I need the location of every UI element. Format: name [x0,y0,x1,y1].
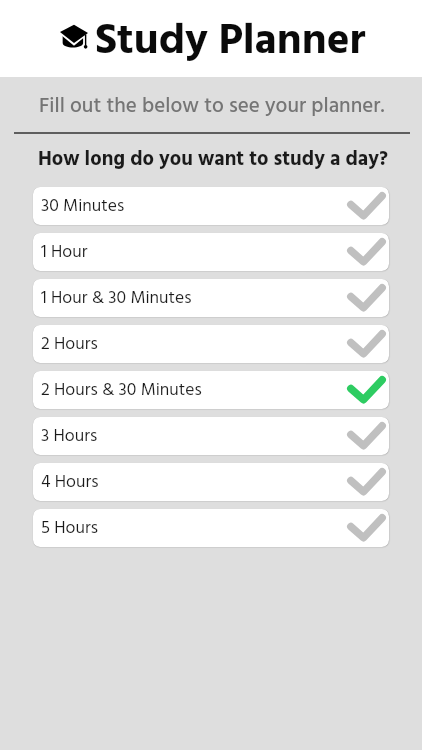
staticText: 4 Hours [41,468,347,496]
staticText: 2 Hours & 30 Minutes [41,376,347,404]
staticText: 30 Minutes [41,192,347,220]
staticText: Study Planner [95,8,366,77]
staticText: 5 Hours [41,514,347,542]
button[interactable]: 2 Hours [33,325,389,363]
button[interactable]: 4 Hours [33,463,389,501]
staticText: Fill out the below to see your planner. [39,90,385,124]
button[interactable]: 30 Minutes [33,187,389,225]
staticText: 1 Hour [41,238,347,266]
button[interactable]: 2 Hours & 30 Minutes [33,371,389,409]
staticText: 1 Hour & 30 Minutes [41,284,347,312]
staticText: How long do you want to study a day? [38,144,389,176]
button[interactable]: 1 Hour [33,233,389,271]
button[interactable]: 1 Hour & 30 Minutes [33,279,389,317]
button[interactable]: 3 Hours [33,417,389,455]
staticText: 2 Hours [41,330,347,358]
button[interactable]: 5 Hours [33,509,389,547]
staticText: 3 Hours [41,422,347,450]
